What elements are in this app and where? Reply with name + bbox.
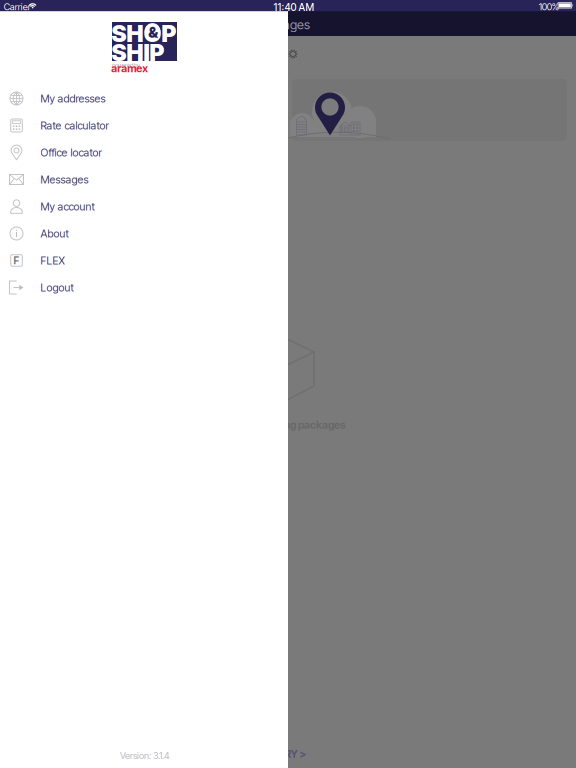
staticText: SHIP [111,38,164,67]
button[interactable]: My addresses [0,85,288,112]
button[interactable]: Messages [0,166,288,193]
staticText: 11:40 AM [273,1,314,13]
staticText: FLEX [40,254,64,267]
button[interactable]: Office locator [0,139,288,166]
staticText: No incoming packages [236,418,346,431]
staticText: Logout [40,281,73,294]
button[interactable]: F [0,247,288,274]
staticText: My addresses [40,92,105,105]
staticText: & [148,24,158,41]
staticText: My account [40,200,94,213]
staticText: powered by [112,61,140,69]
button[interactable]: My account [0,193,288,220]
button[interactable]: About [0,220,288,247]
staticText: VIEW HISTORY > [222,747,306,760]
staticText: Rate calculator [40,119,108,132]
staticText: Messages [40,173,88,186]
staticText: Version: 3.1.4 [120,750,170,761]
staticText: aramex [111,62,148,75]
staticText: Carrier [4,1,31,12]
staticText: About [40,227,68,240]
staticText: My Packages [236,17,310,32]
staticText: Office locator [40,146,101,159]
button[interactable]: Logout [0,274,288,301]
staticText: F [13,254,19,267]
button[interactable]: Rate calculator [0,112,288,139]
staticText: 100% [539,1,559,12]
staticText: SHOP [111,19,176,48]
